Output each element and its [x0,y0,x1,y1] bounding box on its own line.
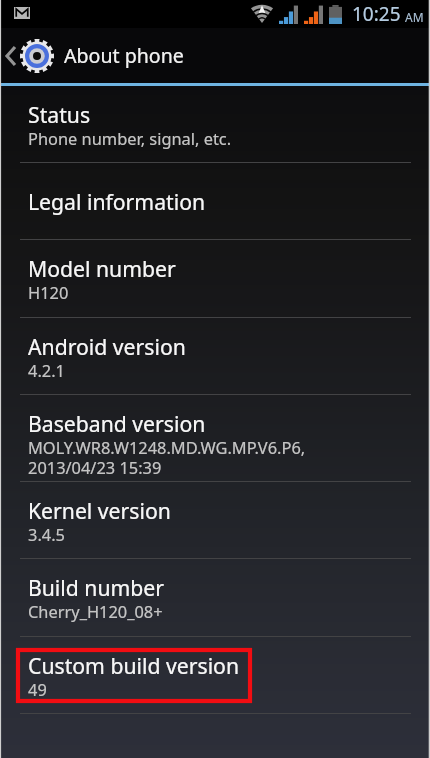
button[interactable]: Model number [0,240,430,318]
button[interactable]: Android version [0,318,430,395]
staticText: 3.4.5 [28,523,65,545]
staticText: Baseband version [28,409,206,438]
staticText: Build number [28,573,165,602]
staticText: H120 [28,281,69,303]
staticText: Phone number, signal, etc. [28,127,232,149]
button[interactable]: Navigate up [0,28,430,83]
button[interactable]: Build number [0,559,430,637]
staticText: 4.2.1 [28,359,65,381]
button[interactable]: Custom build version [0,637,430,714]
staticText: Cherry_H120_08+ [28,600,163,622]
staticText: Legal information [28,187,206,216]
staticText: AM [405,9,424,25]
button[interactable]: Baseband version [0,395,430,482]
button[interactable]: Legal information [0,163,430,240]
staticText: Android version [28,332,186,361]
button[interactable]: Kernel version [0,482,430,559]
staticText: 49 [28,678,47,700]
staticText: Kernel version [28,496,171,525]
staticText: Model number [28,254,176,283]
staticText: Status [28,100,91,129]
button[interactable]: Status [0,86,430,163]
staticText: Custom build version [28,651,240,680]
staticText: 10:25 [352,1,401,27]
staticText: About phone [64,42,184,69]
staticText: MOLY.WR8.W1248.MD.WG.MP.V6.P6, 2013/04/2… [28,436,306,479]
